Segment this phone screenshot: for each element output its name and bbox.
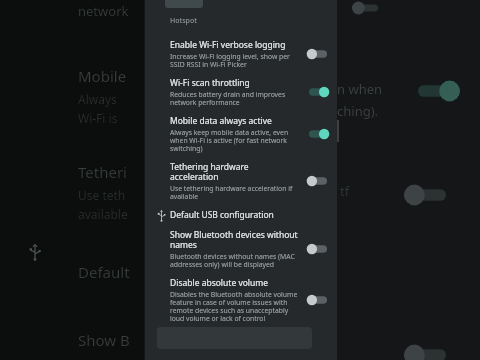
staticText: Tethering hardware acceleration (170, 161, 299, 183)
staticText: Default USB configuration (170, 209, 274, 221)
button[interactable]: Wi-Fi scan throttling (145, 77, 337, 107)
staticText: Disables the Bluetooth absolute volume f… (170, 290, 299, 323)
staticText: Use teth (78, 187, 126, 203)
staticText: Always keep mobile data active, even whe… (170, 128, 299, 153)
staticText: Default (78, 262, 130, 282)
staticText: n when (337, 80, 383, 98)
staticText: Disable absolute volume (170, 277, 269, 289)
staticText: Reduces battery drain and improves netwo… (170, 90, 299, 107)
button[interactable]: Toggle on (305, 83, 331, 101)
staticText: Increase Wi-Fi logging level, show per S… (170, 52, 299, 69)
staticText: Tetheri (78, 162, 127, 182)
button[interactable]: Enable Wi-Fi verbose logging (145, 39, 337, 69)
button[interactable]: Disable absolute volume (145, 277, 337, 323)
button[interactable]: USB (145, 209, 337, 221)
staticText: Show Bluetooth devices without names (170, 229, 299, 251)
staticText: Use tethering hardware acceleration if a… (170, 184, 299, 201)
button[interactable]: Toggle off (305, 291, 331, 309)
staticText: available (78, 206, 128, 222)
staticText: Enable Wi-Fi verbose logging (170, 39, 286, 51)
staticText: Mobile data always active (170, 115, 272, 127)
staticText: Wi-Fi is (78, 110, 118, 126)
staticText: Bluetooth devices without names (MAC add… (170, 252, 299, 269)
staticText: Mobile (78, 66, 127, 86)
staticText: Show B (78, 330, 130, 350)
staticText: ching). (337, 102, 379, 120)
button[interactable]: Toggle off (305, 172, 331, 190)
other: USB (156, 210, 167, 221)
staticText: Always (78, 91, 117, 107)
staticText: Hotspot (170, 16, 197, 26)
button[interactable]: Toggle on (305, 125, 331, 143)
button[interactable]: Toggle off (305, 45, 331, 63)
button[interactable]: Show Bluetooth devices without names (145, 229, 337, 269)
staticText: Wi-Fi scan throttling (170, 77, 250, 89)
staticText: network (78, 2, 129, 20)
button[interactable]: Mobile data always active (145, 115, 337, 153)
button[interactable]: Toggle off (305, 240, 331, 258)
staticText: tf (340, 182, 350, 200)
button[interactable]: Tethering hardware acceleration (145, 161, 337, 201)
